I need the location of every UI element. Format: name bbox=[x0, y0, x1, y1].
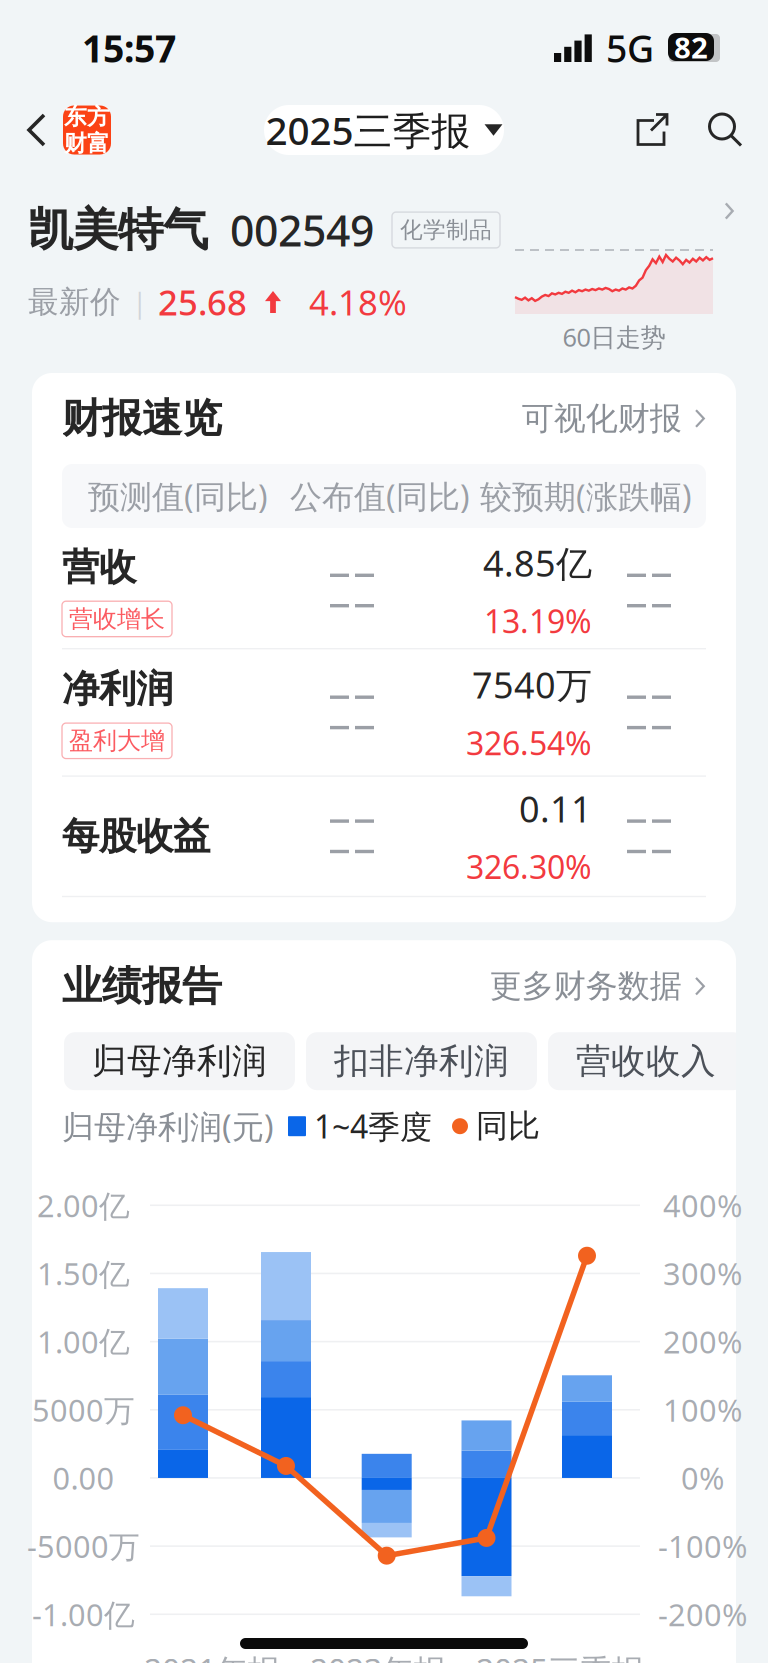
staticText: -200% bbox=[658, 1594, 747, 1635]
staticText: 13.19% bbox=[484, 600, 592, 642]
button[interactable]: 扣非净利润 bbox=[306, 1032, 537, 1090]
staticText: 更多财务数据 bbox=[490, 966, 682, 1006]
staticText: 0% bbox=[681, 1458, 724, 1498]
button[interactable]: 2025三季报 bbox=[264, 105, 504, 155]
staticText: 营收收入 bbox=[576, 1040, 716, 1082]
staticText: 2023年报 bbox=[310, 1649, 446, 1663]
staticText: 归母净利润 bbox=[92, 1040, 267, 1082]
button[interactable]: 分享 bbox=[620, 84, 686, 175]
button[interactable]: 财报速览 bbox=[32, 373, 736, 464]
staticText: -100% bbox=[658, 1526, 747, 1566]
staticText: 归母净利润(元) bbox=[62, 1105, 274, 1147]
staticText: 每股收益 bbox=[62, 813, 210, 859]
staticText: 公布值(同比) bbox=[290, 475, 470, 517]
button[interactable]: 营收收入 bbox=[548, 1032, 744, 1090]
staticText: 凯美特气 bbox=[28, 202, 208, 258]
staticText: 7540万 bbox=[472, 661, 592, 708]
staticText: 4.85亿 bbox=[483, 539, 592, 587]
staticText: 326.54% bbox=[466, 722, 592, 764]
staticText: 0.00 bbox=[52, 1458, 114, 1498]
staticText: 100% bbox=[663, 1389, 742, 1430]
staticText: 业绩报告 bbox=[62, 962, 222, 1011]
button[interactable]: 东方财富 bbox=[63, 105, 111, 154]
staticText: 2.00亿 bbox=[37, 1185, 130, 1226]
staticText: 2025三季报 bbox=[265, 104, 470, 156]
staticText: 60日走势 bbox=[562, 320, 665, 354]
staticText: 5000万 bbox=[32, 1389, 135, 1430]
staticText: 15:57 bbox=[82, 23, 176, 73]
staticText: 002549 bbox=[230, 202, 374, 258]
staticText: 可视化财报 bbox=[522, 399, 682, 438]
button[interactable]: 返回 bbox=[0, 86, 63, 174]
staticText: 化学制品 bbox=[400, 216, 492, 244]
button[interactable]: 搜索 bbox=[686, 84, 768, 175]
staticText: 营收增长 bbox=[69, 604, 165, 634]
staticText: 盈利大增 bbox=[69, 726, 165, 756]
staticText: 25.68 bbox=[158, 279, 247, 325]
staticText: 5G bbox=[606, 23, 654, 73]
staticText: 4.18% bbox=[309, 279, 407, 325]
staticText: 1.50亿 bbox=[37, 1253, 130, 1294]
button[interactable]: 凯美特气 bbox=[0, 174, 768, 373]
staticText: 扣非净利润 bbox=[334, 1040, 509, 1082]
staticText: 2025三季报 bbox=[476, 1649, 644, 1663]
staticText: 营收 bbox=[62, 544, 136, 590]
staticText: 东方 bbox=[64, 103, 110, 130]
staticText: 财报速览 bbox=[62, 394, 222, 443]
staticText: 净利润 bbox=[62, 666, 173, 712]
staticText: 财富 bbox=[64, 129, 110, 157]
button[interactable]: 归母净利润 bbox=[64, 1032, 295, 1090]
button[interactable]: 业绩报告 bbox=[32, 940, 736, 1032]
staticText: 2021年报 bbox=[144, 1649, 280, 1663]
staticText: | bbox=[132, 283, 147, 321]
staticText: 预测值(同比) bbox=[88, 475, 268, 517]
staticText: 0.11 bbox=[519, 785, 592, 832]
staticText: 82 bbox=[674, 27, 708, 66]
staticText: 326.30% bbox=[466, 845, 592, 888]
staticText: 300% bbox=[663, 1253, 742, 1294]
staticText: -1.00亿 bbox=[32, 1594, 135, 1635]
staticText: 1~4季度 bbox=[314, 1105, 432, 1147]
staticText: -5000万 bbox=[27, 1526, 140, 1566]
staticText: 400% bbox=[663, 1185, 742, 1226]
staticText: 200% bbox=[663, 1321, 742, 1362]
staticText: 同比 bbox=[476, 1106, 540, 1146]
staticText: 较预期(涨跌幅) bbox=[480, 475, 692, 517]
staticText: 最新价 bbox=[28, 283, 121, 321]
staticText: 1.00亿 bbox=[37, 1321, 130, 1362]
